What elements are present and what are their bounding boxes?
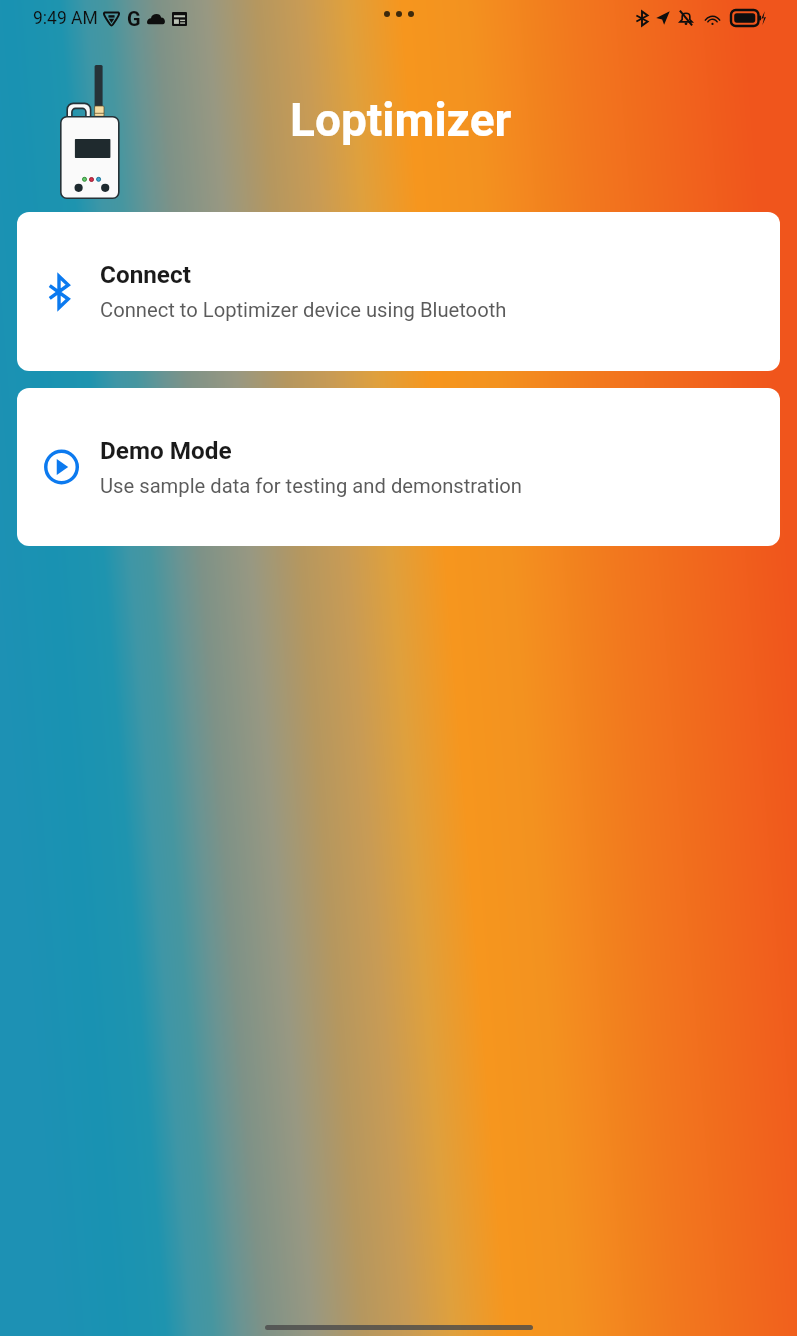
button[interactable]: Connect to Loptimizer device using Bluet…	[17, 212, 780, 371]
staticText: Loptimizer	[290, 93, 512, 147]
button[interactable]: Demo Mode, use sample data for testing a…	[17, 388, 780, 546]
staticText: G	[127, 7, 141, 30]
staticText: Use sample data for testing and demonstr…	[100, 474, 522, 498]
staticText: 9:49 AM	[33, 8, 98, 29]
staticText: Connect to Loptimizer device using Bluet…	[100, 298, 507, 322]
staticText: Connect	[100, 260, 191, 288]
staticText: Demo Mode	[100, 436, 232, 464]
